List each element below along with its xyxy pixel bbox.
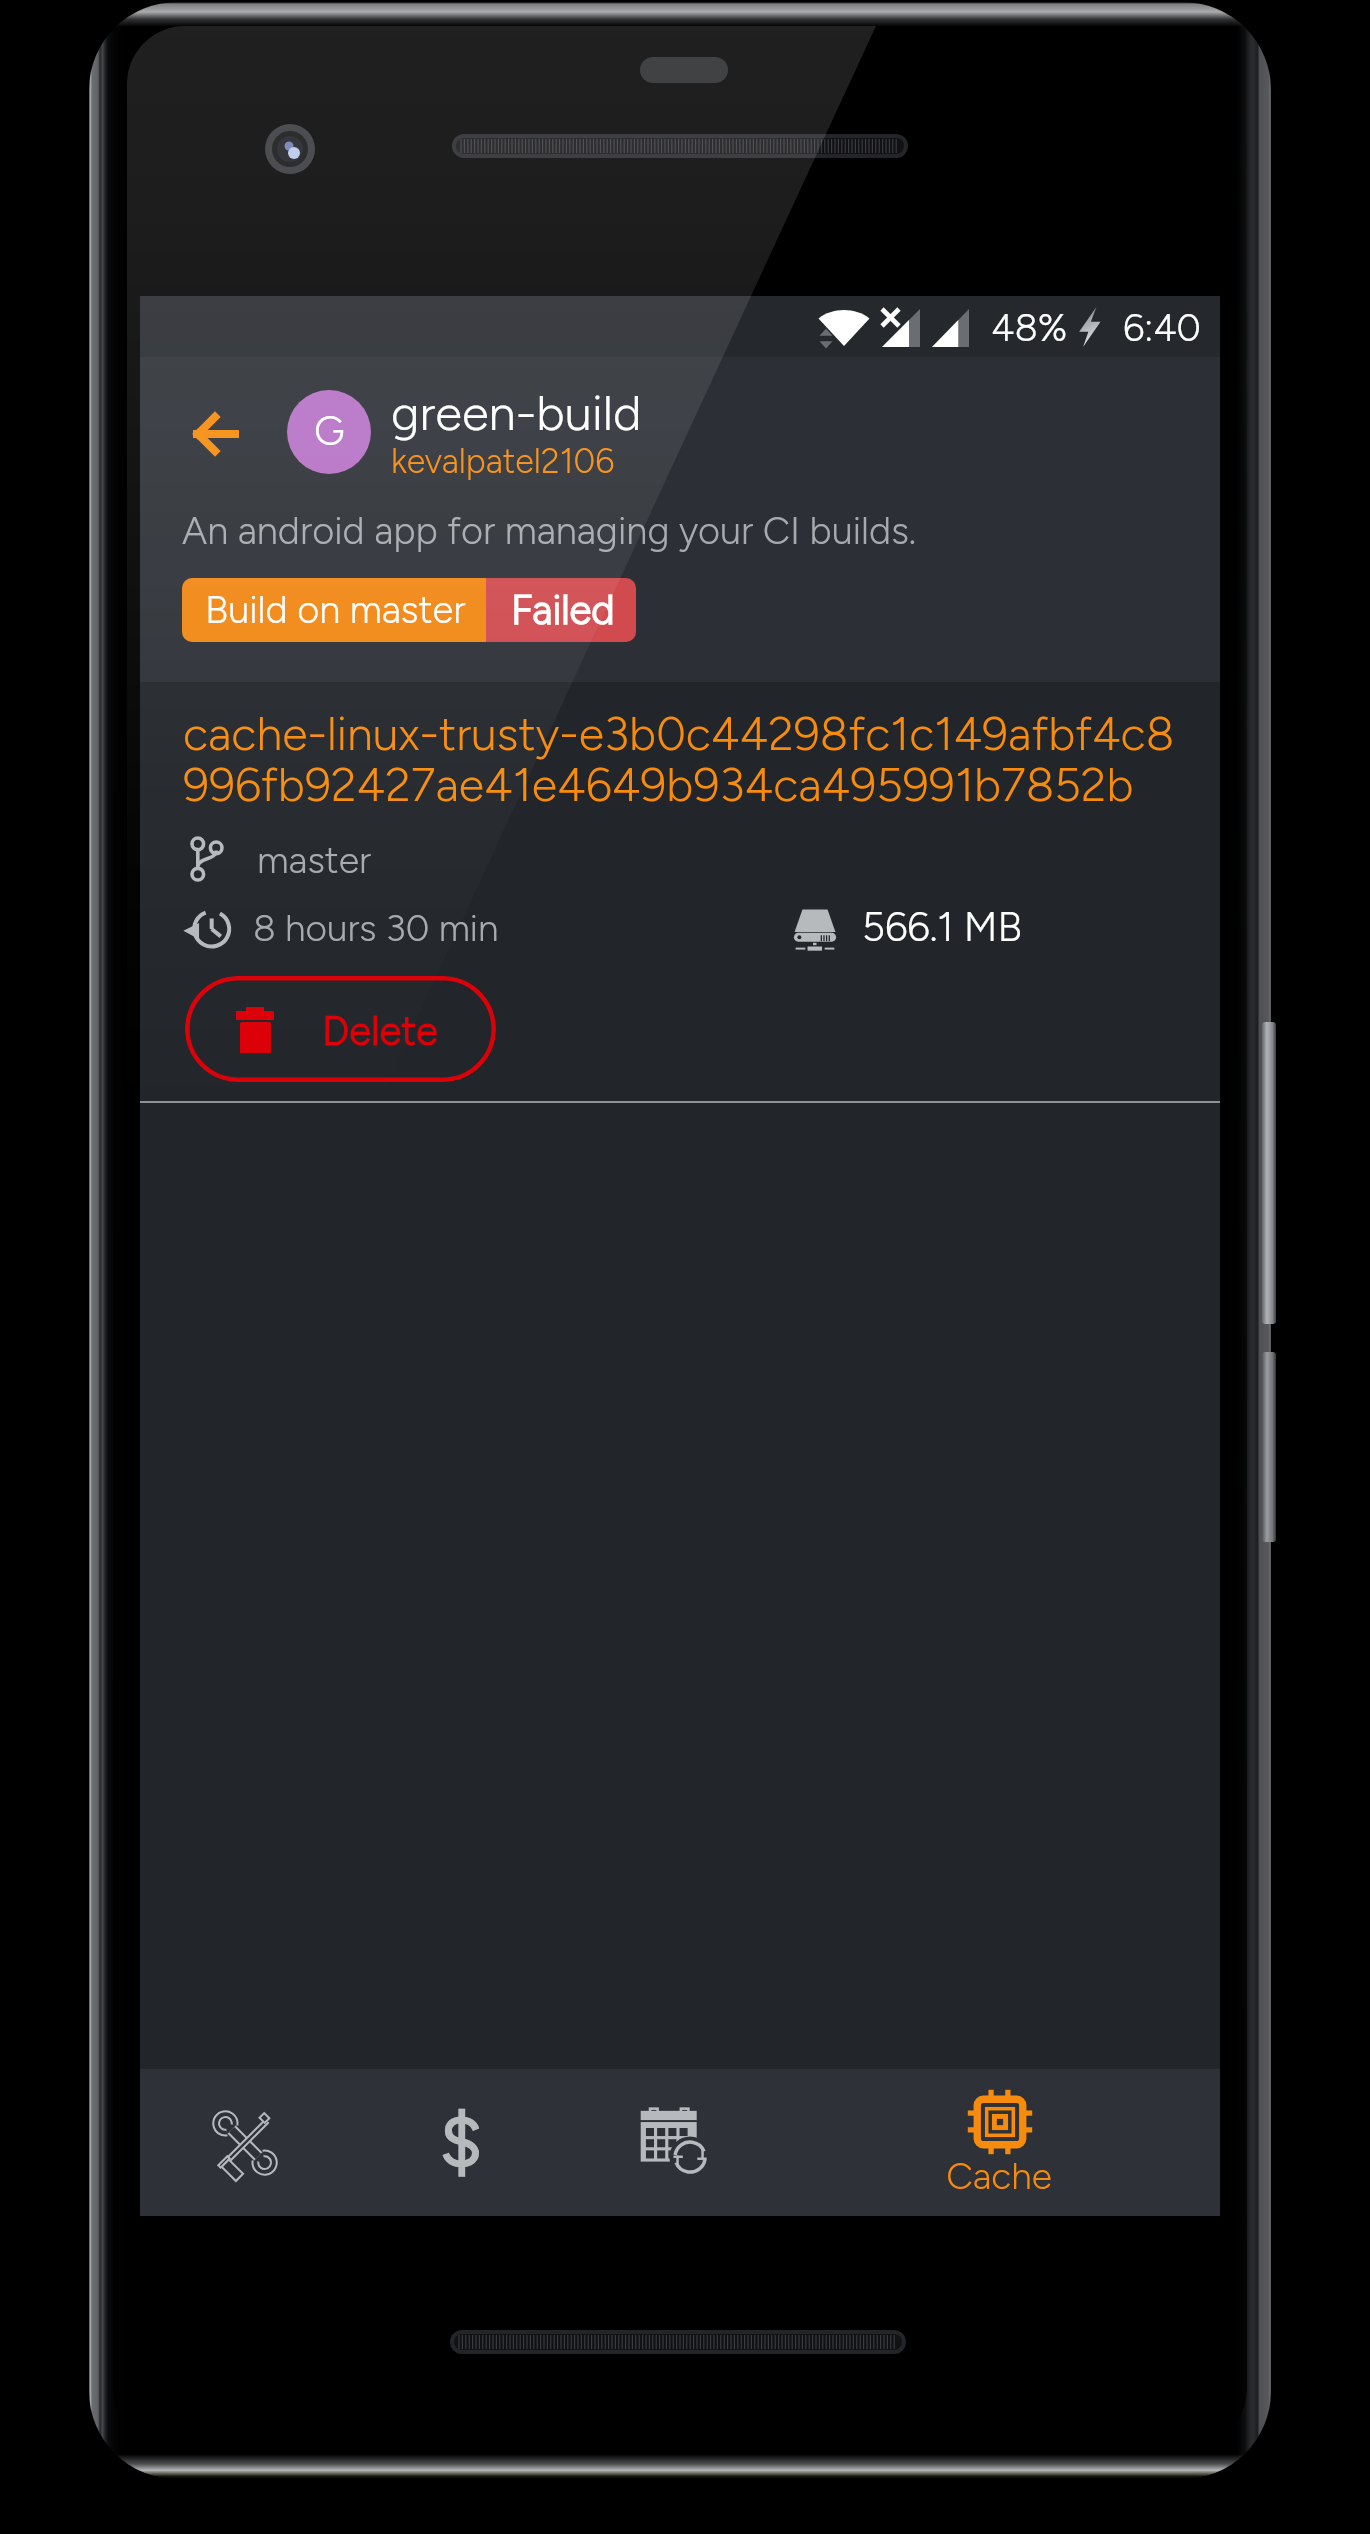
staticText: cache-linux-trusty-e3b0c44298fc1c149afbf… xyxy=(183,706,1175,812)
button[interactable]: Back xyxy=(165,385,261,481)
staticText: 48% xyxy=(991,305,1068,351)
button[interactable]: Build on master xyxy=(182,578,636,642)
button[interactable]: Build history xyxy=(560,2069,770,2216)
staticText: 566.1 MB xyxy=(862,903,1022,951)
button[interactable]: cache-linux-trusty-e3b0c44298fc1c149afbf… xyxy=(140,682,1220,1102)
button[interactable]: G xyxy=(287,390,371,474)
staticText: Build on master xyxy=(205,587,466,633)
staticText: Failed xyxy=(511,586,615,634)
staticText: green-build xyxy=(391,383,642,442)
staticText: Delete xyxy=(322,1007,438,1055)
button[interactable]: Delete xyxy=(185,976,496,1082)
staticText: G xyxy=(314,407,345,455)
button[interactable]: Billing xyxy=(350,2069,560,2216)
staticText: kevalpatel2106 xyxy=(391,441,615,482)
staticText: $ xyxy=(440,2098,482,2187)
staticText: 8 hours 30 min xyxy=(253,906,499,950)
staticText: master xyxy=(257,837,372,882)
staticText: 6:40 xyxy=(1123,305,1201,351)
button[interactable]: Cache xyxy=(770,2069,1220,2216)
button[interactable]: Repositories xyxy=(140,2069,350,2216)
staticText: An android app for managing your CI buil… xyxy=(182,508,917,554)
staticText: Cache xyxy=(946,2154,1052,2198)
